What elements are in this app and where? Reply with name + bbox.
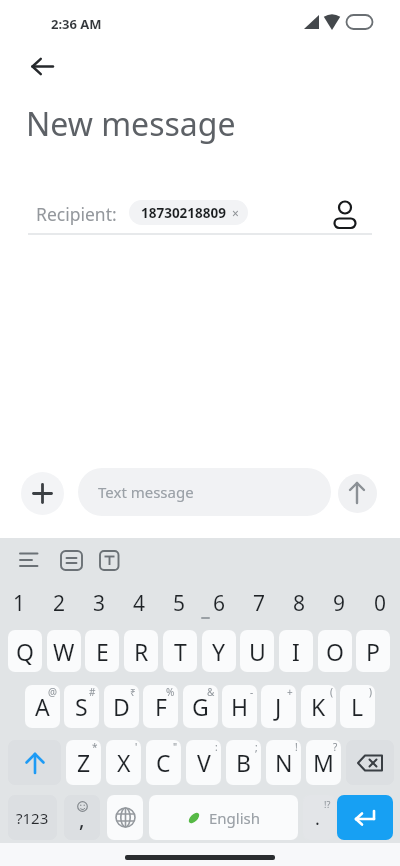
button[interactable]: 7 — [239, 587, 279, 619]
button[interactable]: , — [64, 795, 100, 840]
staticText: F — [155, 691, 167, 722]
staticText: 6 — [213, 589, 226, 618]
button[interactable]: U — [240, 630, 274, 672]
button[interactable] — [107, 795, 143, 840]
staticText: K — [311, 691, 326, 722]
button[interactable]: X — [106, 740, 141, 785]
button[interactable] — [337, 795, 393, 840]
button[interactable]: S — [64, 685, 99, 728]
button[interactable]: 9 — [319, 587, 359, 619]
button[interactable]: Z — [66, 740, 101, 785]
button[interactable]: I — [279, 630, 313, 672]
staticText: @ — [48, 685, 57, 699]
button[interactable]: T — [163, 630, 197, 672]
staticText: R — [134, 636, 149, 667]
button[interactable]: R — [124, 630, 158, 672]
staticText: Q — [16, 636, 34, 667]
button[interactable] — [330, 196, 360, 232]
button[interactable]: 18730218809 — [129, 200, 248, 225]
staticText: ! — [295, 740, 298, 754]
staticText: U — [249, 636, 266, 667]
button[interactable]: F — [143, 685, 178, 728]
staticText: Text message — [98, 482, 194, 502]
button[interactable]: 0 — [360, 587, 400, 619]
staticText: A — [35, 691, 50, 722]
button[interactable]: P — [356, 630, 390, 672]
staticText: ? — [333, 740, 338, 754]
staticText: 4 — [133, 589, 146, 618]
staticText: Y — [212, 636, 226, 667]
staticText: C — [156, 747, 171, 778]
staticText: English — [209, 808, 261, 828]
staticText: M — [313, 747, 334, 778]
button[interactable]: . — [303, 795, 335, 840]
staticText: 1 — [13, 589, 26, 618]
staticText: J — [275, 691, 282, 722]
staticText: - — [250, 685, 254, 699]
button[interactable]: 3 — [79, 587, 119, 619]
button[interactable]: 8 — [279, 587, 319, 619]
staticText: 2:36 AM — [51, 15, 102, 33]
button[interactable]: English — [149, 795, 298, 840]
button[interactable]: Text message — [78, 468, 331, 516]
staticText: # — [89, 685, 96, 699]
button[interactable]: W — [47, 630, 81, 672]
staticText: + — [287, 685, 293, 699]
staticText: X — [117, 747, 131, 778]
staticText: ( — [330, 685, 333, 699]
button[interactable]: 5 — [159, 587, 199, 619]
staticText: G — [192, 691, 209, 722]
staticText: L — [351, 691, 364, 722]
staticText: 5 — [173, 589, 186, 618]
staticText: % — [166, 685, 175, 699]
staticText: New message — [26, 102, 236, 146]
staticText: 18730218809 — [141, 204, 226, 222]
staticText: Z — [77, 747, 91, 778]
button[interactable]: 4 — [119, 587, 159, 619]
button[interactable]: B — [226, 740, 261, 785]
button[interactable]: K — [301, 685, 336, 728]
staticText: , — [79, 806, 85, 833]
button[interactable]: 6 — [199, 587, 239, 619]
staticText: T — [174, 636, 187, 667]
button[interactable] — [338, 474, 377, 513]
staticText: . — [315, 806, 320, 831]
button[interactable] — [346, 740, 394, 785]
button[interactable]: G — [183, 685, 218, 728]
staticText: × — [232, 205, 239, 221]
button[interactable] — [24, 50, 64, 86]
staticText: W — [53, 636, 75, 667]
button[interactable]: L — [340, 685, 375, 728]
button[interactable]: Y — [202, 630, 236, 672]
staticText: 3 — [93, 589, 106, 618]
staticText: Recipient: — [36, 202, 117, 226]
button[interactable]: M — [306, 740, 341, 785]
button[interactable]: ?123 — [8, 795, 57, 840]
button[interactable]: Q — [8, 630, 42, 672]
button[interactable]: A — [25, 685, 60, 728]
button[interactable] — [8, 740, 61, 785]
button[interactable]: D — [104, 685, 139, 728]
staticText: & — [207, 685, 215, 699]
staticText: : — [215, 740, 218, 754]
staticText: ) — [369, 685, 372, 699]
staticText: O — [326, 636, 344, 667]
staticText: E — [96, 636, 109, 667]
staticText: 7 — [253, 589, 266, 618]
button[interactable]: J — [261, 685, 296, 728]
staticText: 8 — [293, 589, 306, 618]
button[interactable]: V — [186, 740, 221, 785]
button[interactable]: O — [318, 630, 352, 672]
button[interactable]: 1 — [0, 587, 39, 619]
button[interactable]: 2 — [39, 587, 79, 619]
button[interactable]: N — [266, 740, 301, 785]
staticText: H — [231, 691, 249, 722]
button[interactable] — [21, 472, 64, 515]
staticText: N — [275, 747, 293, 778]
staticText: V — [197, 747, 211, 778]
button[interactable]: C — [146, 740, 181, 785]
button[interactable]: E — [85, 630, 119, 672]
staticText: 2 — [53, 589, 66, 618]
staticText: ' — [135, 740, 138, 754]
button[interactable]: H — [222, 685, 257, 728]
